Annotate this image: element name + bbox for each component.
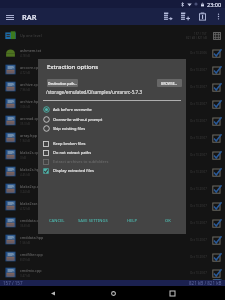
- button[interactable]: Open navigation drawer: [0, 8, 20, 25]
- staticText: 4.45 kB: [20, 173, 30, 177]
- button[interactable]: Back: [46, 286, 60, 300]
- staticText: Oct 13 20:07: [190, 238, 207, 242]
- staticText: Oct 13 20:07: [190, 204, 207, 208]
- staticText: Destination path...: [48, 81, 78, 85]
- staticText: 4.18 kB: [20, 54, 30, 58]
- staticText: Oct 13 20:07: [190, 153, 207, 157]
- staticText: 7.96 kB: [20, 88, 30, 92]
- button[interactable]: Select cmdfilter.cpp: [211, 251, 223, 263]
- staticText: CANCEL: [49, 218, 65, 224]
- button[interactable]: Display extracted files: [43, 166, 181, 175]
- staticText: 1.56 kB: [20, 241, 30, 245]
- staticText: Extraction options: [47, 63, 99, 71]
- button[interactable]: Select cmdmix.cpp: [211, 267, 223, 279]
- staticText: Oct 13 20:07: [190, 271, 207, 275]
- button[interactable]: BROWSE...: [157, 79, 182, 87]
- staticText: 3 kB: [20, 156, 26, 160]
- button[interactable]: Select cmddata.cpp: [211, 217, 223, 229]
- staticText: 821 kB / 821 kB: [189, 280, 222, 286]
- staticText: Oct 13 20:06: [190, 51, 207, 55]
- button[interactable]: Overwrite without prompt: [43, 114, 181, 124]
- button[interactable]: arccore.cpp: [0, 61, 225, 78]
- staticText: ashmem.txt: [20, 48, 42, 53]
- button[interactable]: More options: [211, 8, 225, 25]
- staticText: blake2sse.cpp: [20, 201, 45, 206]
- button[interactable]: Delete: [194, 8, 211, 25]
- staticText: Oct 13 20:07: [190, 136, 207, 140]
- staticText: HELP: [127, 218, 138, 224]
- staticText: 23:00: [207, 1, 222, 8]
- staticText: cmdmix.cpp: [20, 268, 42, 273]
- staticText: 4.72 kB: [20, 207, 30, 211]
- staticText: 3.06 kB: [20, 105, 30, 109]
- staticText: 8.09 kB: [20, 258, 30, 262]
- button[interactable]: Select blake2s.cpp: [211, 149, 223, 161]
- staticText: cmddata.hpp: [20, 235, 44, 240]
- button[interactable]: Select blake2sse.cpp: [211, 200, 223, 212]
- button[interactable]: Select archive.cpp: [211, 81, 223, 93]
- button[interactable]: Skip existing files: [43, 123, 181, 133]
- staticText: RAR: [22, 12, 37, 22]
- button[interactable]: archive.hpp: [0, 95, 225, 112]
- staticText: 821 kB / 821 kB: [186, 36, 207, 40]
- staticText: Oct 13 20:07: [190, 119, 207, 123]
- staticText: Oct 13 20:07: [190, 221, 207, 225]
- button[interactable]: ashmem.txt: [0, 44, 225, 61]
- button[interactable]: cmdfilter.cpp: [0, 248, 225, 265]
- button[interactable]: HELP: [126, 216, 139, 226]
- staticText: 1.94 kB: [20, 139, 30, 143]
- staticText: Oct 13 20:07: [190, 85, 207, 89]
- button[interactable]: Keep broken files: [43, 139, 181, 148]
- staticText: arcread.cpp: [20, 116, 41, 121]
- button[interactable]: Select blake2sp.cpp: [211, 183, 223, 195]
- button[interactable]: Select arcread.cpp: [211, 115, 223, 127]
- button[interactable]: Ask before overwrite: [43, 104, 181, 114]
- staticText: array.hpp: [20, 133, 37, 138]
- button[interactable]: blake2sse.cpp: [0, 197, 225, 214]
- button[interactable]: Select arccore.cpp: [211, 64, 223, 76]
- button[interactable]: blake2s.cpp: [0, 146, 225, 163]
- button[interactable]: Extract: [160, 8, 177, 25]
- staticText: Overwrite without prompt: [53, 117, 103, 122]
- button[interactable]: cmddata.hpp: [0, 231, 225, 248]
- button[interactable]: Select array.hpp: [211, 132, 223, 144]
- staticText: 3.47 kB: [20, 274, 30, 278]
- staticText: 36.8 kB: [20, 224, 30, 228]
- button[interactable]: Select blake2s.hpp: [211, 166, 223, 178]
- staticText: Up one level: [20, 33, 42, 38]
- staticText: Keep broken files: [53, 141, 86, 146]
- button[interactable]: Select cmddata.hpp: [211, 234, 223, 246]
- staticText: Oct 13 20:07: [190, 255, 207, 259]
- button[interactable]: Extract archives to subfolders: [43, 157, 181, 166]
- button[interactable]: blake2sp.cpp: [0, 180, 225, 197]
- button[interactable]: Up one level: [0, 27, 225, 44]
- button[interactable]: Home: [106, 286, 120, 300]
- button[interactable]: arcread.cpp: [0, 112, 225, 129]
- staticText: /storage/emulated/0/samples/unrarsrc-5.7…: [46, 89, 143, 95]
- staticText: cmdfilter.cpp: [20, 252, 43, 257]
- button[interactable]: Add to archive: [177, 8, 194, 25]
- button[interactable]: Select archive.hpp: [211, 98, 223, 110]
- button[interactable]: archive.cpp: [0, 78, 225, 95]
- staticText: Oct 13 20:07: [190, 170, 207, 174]
- button[interactable]: Select Up one level: [211, 30, 223, 42]
- staticText: 157 / 157: [194, 32, 207, 36]
- button[interactable]: cmdmix.cpp: [0, 265, 225, 280]
- staticText: 157 / 157: [3, 280, 23, 286]
- button[interactable]: cmddata.cpp: [0, 214, 225, 231]
- staticText: Extract archives to subfolders: [53, 159, 109, 164]
- button[interactable]: OK: [164, 216, 172, 226]
- button[interactable]: Recent apps: [165, 286, 179, 300]
- button[interactable]: Destination path...: [47, 79, 78, 87]
- button[interactable]: array.hpp: [0, 129, 225, 146]
- button[interactable]: Select ashmem.txt: [211, 47, 223, 59]
- staticText: archive.cpp: [20, 82, 41, 87]
- staticText: blake2s.hpp: [20, 167, 42, 172]
- staticText: blake2sp.cpp: [20, 184, 44, 189]
- button[interactable]: SAVE SETTINGS: [77, 216, 109, 226]
- button[interactable]: CANCEL: [48, 216, 66, 226]
- button[interactable]: blake2s.hpp: [0, 163, 225, 180]
- button[interactable]: Do not extract paths: [43, 148, 181, 157]
- staticText: OK: [165, 218, 171, 224]
- staticText: Oct 13 20:07: [190, 68, 207, 72]
